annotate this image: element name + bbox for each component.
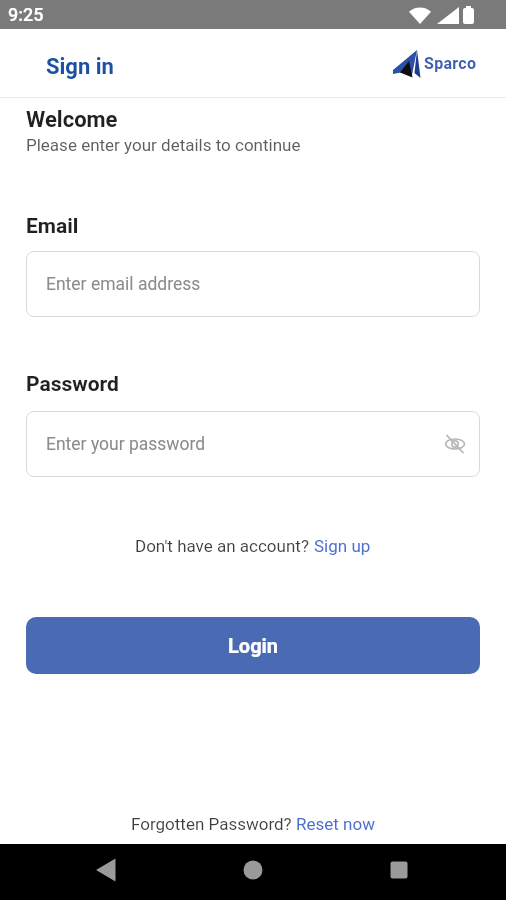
staticText: Please enter your details to continue xyxy=(26,135,301,155)
button[interactable]: Login xyxy=(26,617,480,674)
button[interactable]: Enter email address xyxy=(26,251,480,317)
staticText: Enter your password xyxy=(46,434,206,455)
button[interactable]: Sign up xyxy=(314,536,371,556)
button[interactable] xyxy=(337,844,506,900)
button[interactable] xyxy=(0,844,168,900)
staticText: Password xyxy=(26,372,119,397)
button[interactable]: Sparco xyxy=(393,48,477,78)
staticText: Don't have an account? xyxy=(135,536,314,556)
staticText: 9:25 xyxy=(8,4,44,25)
staticText: Sparco xyxy=(424,54,477,73)
staticText: Enter email address xyxy=(46,274,201,295)
button[interactable] xyxy=(168,844,337,900)
button[interactable]: Reset now xyxy=(296,814,375,834)
staticText: Forgotten Password? xyxy=(131,814,296,834)
staticText: Welcome xyxy=(26,107,118,133)
button[interactable]: Enter your password xyxy=(26,411,480,477)
staticText: Email xyxy=(26,214,79,239)
staticText: Login xyxy=(228,634,279,657)
staticText: Sign in xyxy=(46,54,114,80)
